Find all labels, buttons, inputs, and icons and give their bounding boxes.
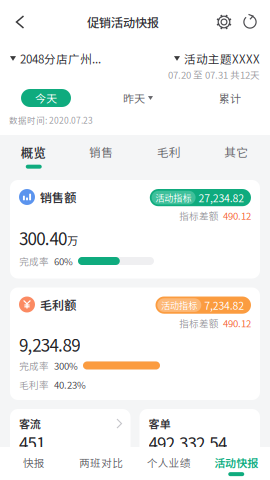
staticText: 毛利率 [19, 379, 49, 390]
button[interactable]: 其它 [202, 135, 270, 180]
button[interactable]: 客单 [139, 409, 260, 465]
button[interactable]: 活动主题XXXX [174, 51, 260, 66]
staticText: 活动主题XXXX [184, 52, 260, 65]
staticText: 昨天 [123, 92, 145, 104]
button[interactable]: Back [5, 7, 35, 37]
staticText: 促销活动快报 [87, 16, 159, 28]
staticText: 数据时间: 2020.07.23 [9, 115, 93, 125]
staticText: 492,332.54 [148, 435, 227, 450]
button[interactable]: 毛利 [135, 135, 202, 180]
staticText: 活动快报 [214, 457, 258, 468]
button[interactable]: 今天 [21, 89, 71, 107]
staticText: 客单 [148, 418, 170, 429]
staticText: 两班对比 [79, 457, 123, 468]
staticText: 销售 [89, 146, 113, 158]
staticText: 完成率 [19, 255, 49, 266]
button[interactable]: 客流 [10, 409, 130, 465]
button[interactable]: 活动快报 [202, 447, 270, 480]
staticText: 活动指标 [156, 192, 192, 203]
button[interactable]: Settings [211, 9, 237, 35]
staticText: 2048分店广州... [20, 52, 101, 65]
staticText: 累计 [219, 92, 241, 104]
staticText: 毛利额 [40, 298, 76, 311]
staticText: 300% [54, 360, 78, 371]
button[interactable]: 昨天 [123, 89, 153, 107]
staticText: 指标差额 [179, 318, 219, 329]
button[interactable]: 个人业绩 [135, 447, 202, 480]
staticText: 个人业绩 [147, 457, 191, 468]
button[interactable]: Refresh [237, 9, 263, 35]
staticText: 完成率 [19, 360, 49, 371]
button[interactable]: 累计 [205, 89, 255, 107]
staticText: 销售额 [40, 191, 76, 203]
staticText: 今天 [35, 92, 57, 104]
staticText: 万 [67, 235, 78, 245]
button[interactable]: 2048分店广州... [10, 51, 101, 66]
staticText: 27,234.82 [199, 191, 244, 204]
button[interactable]: 概览 [0, 135, 67, 180]
staticText: 451 [19, 435, 45, 450]
staticText: 490.12 [223, 318, 251, 329]
staticText: 客流 [19, 418, 41, 429]
staticText: 毛利 [157, 146, 181, 158]
staticText: 9,234.89 [19, 337, 80, 352]
staticText: 活动指标 [161, 300, 197, 310]
button[interactable]: 销售 [67, 135, 135, 180]
staticText: 概览 [21, 146, 47, 159]
staticText: 其它 [224, 146, 248, 158]
staticText: 7,234.82 [204, 299, 244, 311]
staticText: 快报 [23, 457, 45, 468]
staticText: 60% [54, 255, 73, 266]
staticText: 300.40 [19, 230, 67, 245]
staticText: 指标差额 [179, 210, 219, 221]
staticText: 07.20 至 07.31 共12天 [168, 69, 260, 80]
button[interactable]: 两班对比 [67, 447, 135, 480]
staticText: 40.23% [54, 379, 86, 390]
button[interactable]: 快报 [0, 447, 67, 480]
staticText: 490.12 [223, 210, 251, 221]
